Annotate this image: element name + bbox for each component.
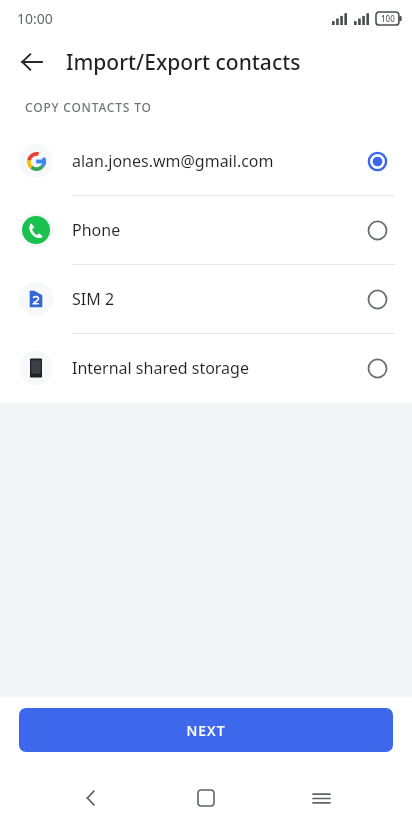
button[interactable]: Internal shared storage — [0, 334, 412, 402]
staticText: NEXT — [186, 721, 226, 740]
staticText: Phone — [72, 219, 360, 241]
staticText: COPY CONTACTS TO — [25, 99, 152, 115]
button[interactable]: Back — [67, 774, 115, 822]
staticText: Internal shared storage — [72, 357, 360, 379]
staticText: SIM 2 — [72, 288, 360, 310]
staticText: alan.jones.wm@gmail.com — [72, 150, 360, 172]
button[interactable]: Home — [182, 774, 230, 822]
button[interactable]: Back — [10, 40, 54, 84]
staticText: 100 — [381, 13, 395, 24]
staticText: Import/Export contacts — [66, 48, 301, 77]
staticText: 10:00 — [17, 9, 53, 28]
button[interactable]: NEXT — [19, 708, 393, 752]
button[interactable]: SIM 2 — [0, 265, 412, 333]
button[interactable]: Phone — [0, 196, 412, 264]
button[interactable]: alan.jones.wm@gmail.com — [0, 126, 412, 195]
button[interactable]: Recent apps — [297, 774, 345, 822]
